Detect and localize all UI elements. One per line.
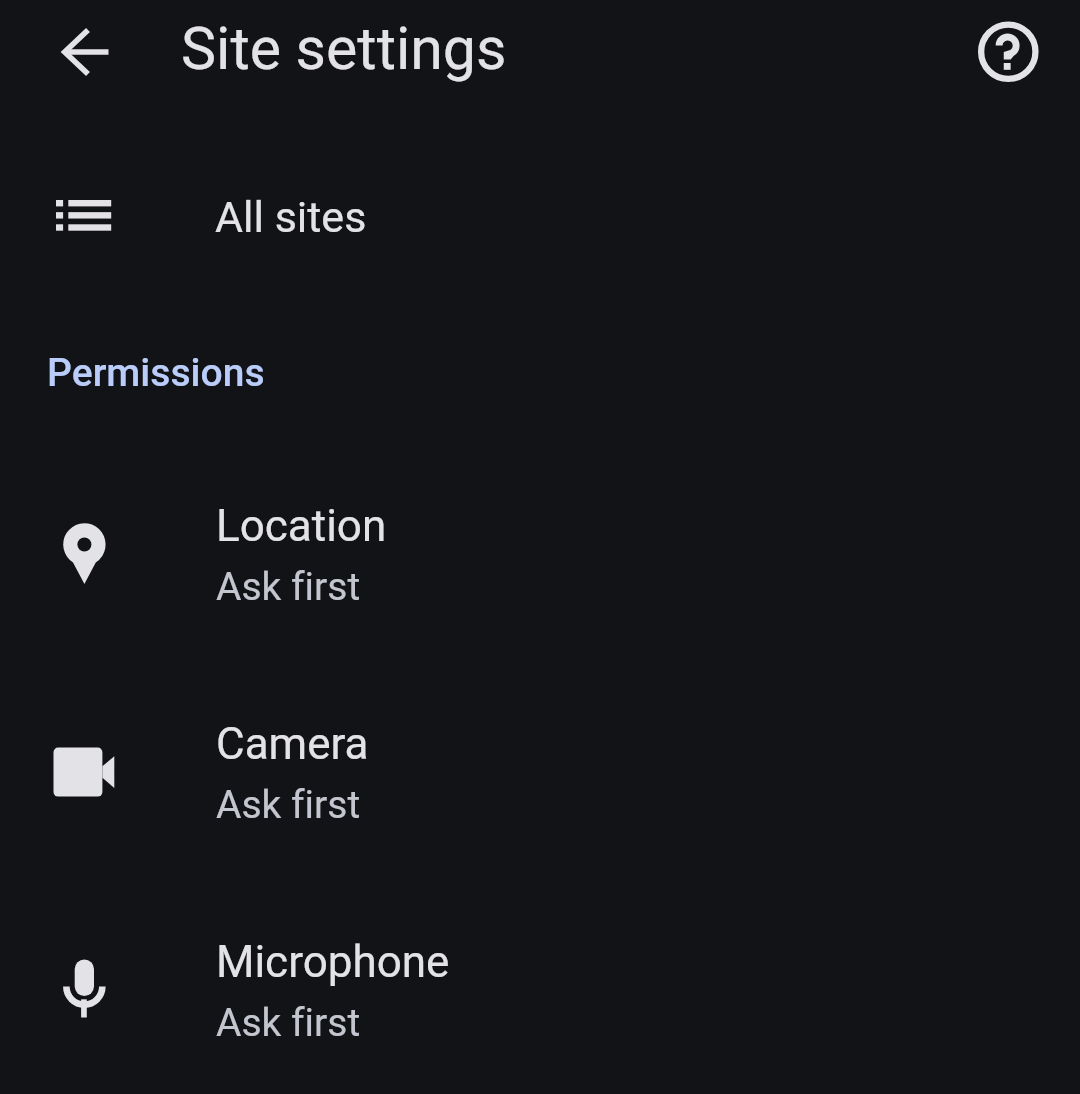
- button[interactable]: Navigate up: [40, 16, 128, 88]
- staticText: Ask first: [216, 564, 361, 610]
- staticText: Ask first: [216, 1000, 361, 1046]
- button[interactable]: Help and feedback: [972, 16, 1044, 88]
- staticText: Microphone: [216, 936, 450, 988]
- staticText: All sites: [215, 192, 367, 242]
- button[interactable]: Camera: [0, 670, 1080, 888]
- staticText: Permissions: [47, 350, 265, 396]
- staticText: Camera: [216, 718, 369, 770]
- button[interactable]: Location: [0, 452, 1080, 670]
- staticText: Site settings: [181, 14, 507, 83]
- staticText: Location: [216, 500, 387, 552]
- button[interactable]: Microphone: [0, 888, 1080, 1094]
- staticText: Ask first: [216, 782, 361, 828]
- button[interactable]: All sites: [0, 150, 1080, 282]
